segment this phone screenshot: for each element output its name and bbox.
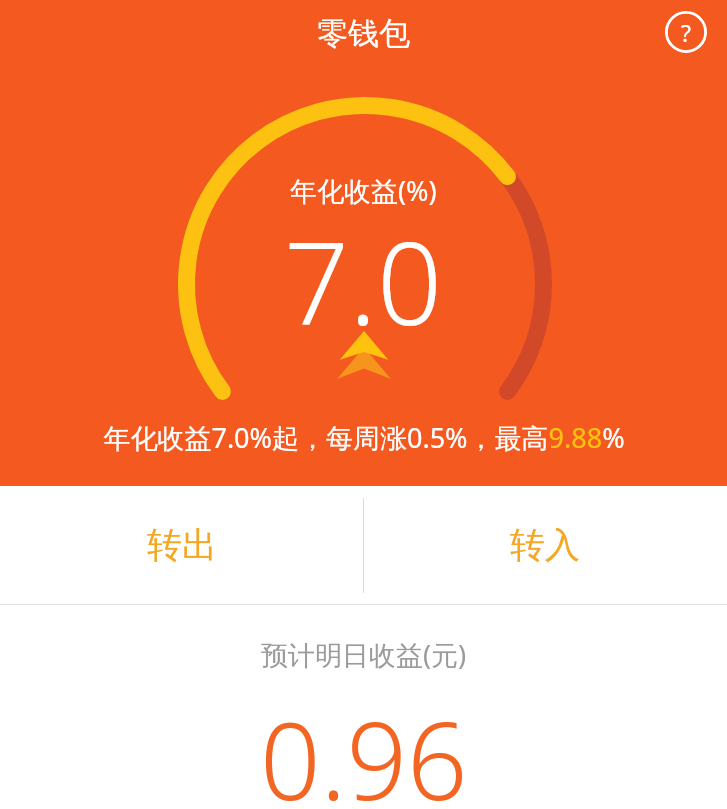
staticText: ?: [681, 17, 691, 48]
staticText: 年化收益(%): [290, 172, 437, 209]
staticText: 0.96: [260, 687, 468, 809]
staticText: 预计明日收益(元): [261, 636, 467, 673]
button[interactable]: 转入: [363, 486, 727, 604]
staticText: 零钱包: [317, 14, 410, 53]
button[interactable]: 转出: [0, 486, 363, 604]
staticText: 年化收益7.0%起，每周涨0.5%，最高9.88%: [103, 419, 625, 456]
staticText: 转入: [510, 523, 580, 567]
button[interactable]: Help: [665, 11, 707, 53]
staticText: 转出: [147, 523, 217, 567]
staticText: 7.0: [284, 203, 443, 358]
